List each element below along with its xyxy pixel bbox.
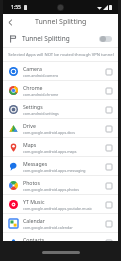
staticText: Drive: [23, 122, 36, 129]
staticText: YT Music: [23, 198, 45, 205]
button[interactable]: Photos: [3, 176, 118, 194]
button[interactable]: Settings: [3, 100, 118, 118]
staticText: com.google.android.apps.photos: [23, 187, 79, 192]
button[interactable]: Select Maps: [105, 144, 112, 151]
button[interactable]: Select Contacts: [105, 239, 112, 246]
button[interactable]: Home: [42, 251, 80, 254]
staticText: com.google.android.apps.maps: [23, 149, 77, 154]
staticText: com.google.android.apps.youtube.music: [23, 206, 93, 211]
button[interactable]: Chrome: [3, 81, 118, 99]
staticText: Contacts: [23, 236, 45, 243]
staticText: com.android.camera: [23, 73, 58, 78]
staticText: com.android.chrome: [23, 92, 59, 97]
staticText: Camera: [23, 65, 42, 72]
button[interactable]: Back: [3, 15, 17, 29]
button[interactable]: Contacts: [3, 233, 118, 251]
staticText: Settings: [23, 103, 43, 110]
button[interactable]: YT Music: [3, 195, 118, 213]
button[interactable]: Select Photos: [105, 182, 112, 189]
staticText: Chrome: [23, 84, 43, 91]
staticText: com.google.android.apps.messaging: [23, 168, 86, 173]
staticText: 1:55: [11, 4, 21, 11]
staticText: Messages: [23, 160, 48, 167]
button[interactable]: Tunnel Splitting toggle: [99, 36, 112, 42]
button[interactable]: Select YT Music: [105, 201, 112, 208]
button[interactable]: Messages: [3, 157, 118, 175]
button[interactable]: Calendar: [3, 214, 118, 232]
staticText: com.android.settings: [23, 111, 59, 116]
staticText: Maps: [23, 141, 37, 148]
button[interactable]: Select Settings: [105, 106, 112, 113]
staticText: com.google.android.apps.docs: [23, 130, 75, 135]
button[interactable]: Select Drive: [105, 125, 112, 132]
button[interactable]: Select Chrome: [105, 87, 112, 94]
staticText: Selected Apps will NOT be routed through…: [8, 52, 114, 58]
button[interactable]: Camera: [3, 62, 118, 80]
button[interactable]: Select Camera: [105, 68, 112, 75]
button[interactable]: Select Calendar: [105, 220, 112, 227]
button[interactable]: Tunnel Splitting: [3, 30, 118, 47]
button[interactable]: Select Messages: [105, 163, 112, 170]
staticText: com.google.android.calendar: [23, 225, 73, 230]
staticText: Tunnel Splitting: [22, 34, 70, 43]
staticText: Photos: [23, 179, 40, 186]
button[interactable]: Drive: [3, 119, 118, 137]
button[interactable]: Maps: [3, 138, 118, 156]
staticText: Tunnel Splitting: [35, 17, 87, 27]
staticText: Calendar: [23, 217, 45, 224]
